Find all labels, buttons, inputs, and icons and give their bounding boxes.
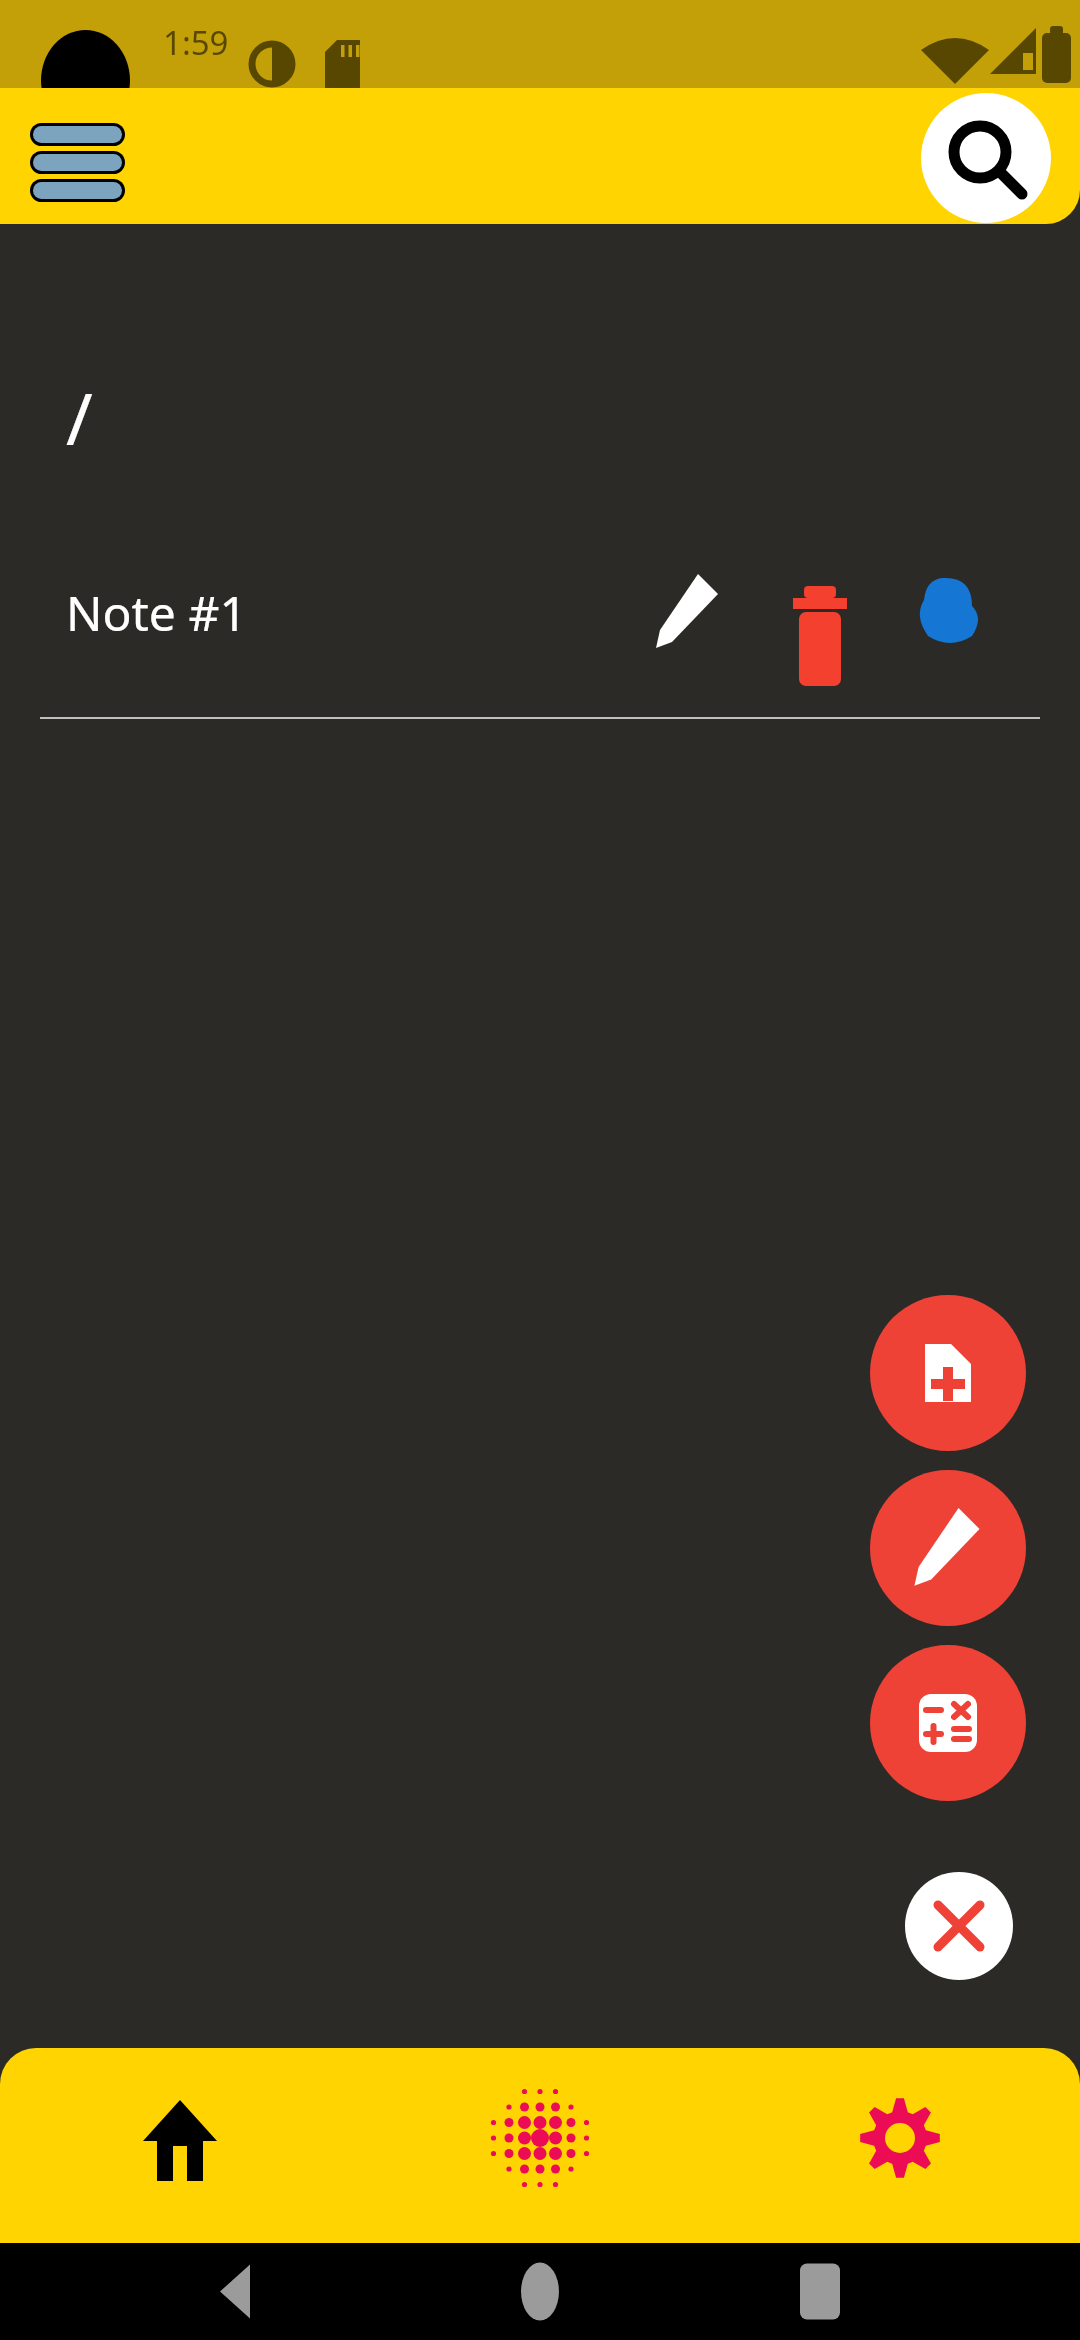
button[interactable]: Calculator — [870, 1645, 1026, 1801]
button[interactable]: Settings — [720, 2048, 1080, 2243]
button[interactable]: Home — [0, 2048, 360, 2243]
button[interactable]: Edit — [870, 1470, 1026, 1626]
button[interactable]: Search — [921, 93, 1051, 223]
button[interactable]: Edit note — [640, 564, 736, 660]
staticText: Note #1 — [66, 580, 247, 645]
staticText: 1:59 — [163, 20, 229, 65]
button[interactable]: Delete note — [772, 564, 868, 660]
button[interactable]: Menu — [18, 106, 128, 206]
staticText: / — [66, 368, 93, 466]
button[interactable]: Sync to cloud — [902, 564, 998, 660]
button[interactable]: Note #1 — [0, 540, 1080, 700]
button[interactable]: Dashboard — [360, 2048, 720, 2243]
button[interactable]: New document — [870, 1295, 1026, 1451]
button[interactable]: Close menu — [905, 1872, 1013, 1980]
